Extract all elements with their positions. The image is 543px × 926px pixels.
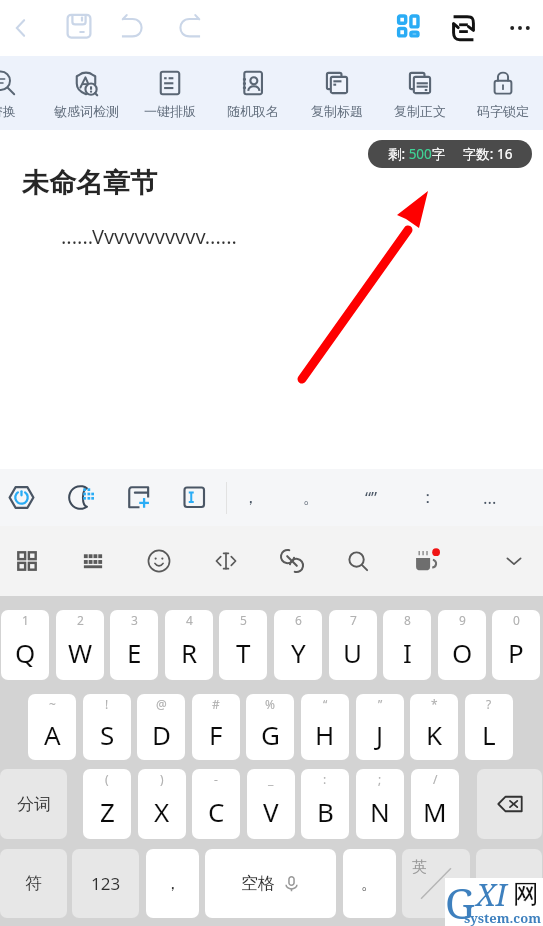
staticText: W — [68, 635, 93, 670]
button[interactable]: ) — [138, 769, 186, 839]
staticText: A — [44, 717, 61, 752]
staticText: 6 — [295, 612, 302, 628]
button[interactable]: ; — [356, 769, 404, 839]
staticText: 未命名章节 — [22, 166, 157, 200]
staticText: 9 — [459, 612, 466, 628]
staticText: ： — [419, 487, 436, 508]
staticText: _ — [268, 771, 274, 787]
staticText: “” — [365, 486, 378, 509]
staticText: 英 — [412, 858, 427, 877]
button[interactable]: 2 — [56, 610, 104, 680]
button[interactable]: 9 — [438, 610, 486, 680]
button[interactable]: 剩: 500字 字数: 16 — [368, 140, 532, 168]
button[interactable]: 随机取名 — [211, 56, 295, 130]
staticText: N — [370, 794, 390, 829]
button[interactable]: Keyboard layouts — [0, 526, 60, 596]
button[interactable]: ， — [220, 469, 280, 526]
button[interactable]: Collapse keyboard — [486, 526, 542, 596]
button[interactable]: 6 — [274, 610, 322, 680]
button[interactable]: @ — [137, 694, 185, 760]
staticText: 分词 — [17, 794, 51, 815]
staticText: R — [181, 635, 198, 670]
button[interactable]: / — [411, 769, 459, 839]
button[interactable]: ! — [83, 694, 131, 760]
button[interactable]: ? — [465, 694, 513, 760]
button[interactable]: 符 — [0, 849, 67, 918]
button[interactable]: Night mode — [52, 469, 108, 526]
button[interactable]: ， — [146, 849, 199, 918]
staticText: 复制正文 — [394, 103, 446, 119]
staticText: ( — [105, 771, 109, 787]
staticText: 。 — [361, 873, 378, 894]
staticText: ” — [378, 696, 383, 712]
staticText: E — [127, 635, 142, 670]
staticText: O — [452, 635, 473, 670]
button[interactable]: 复制正文 — [378, 56, 462, 130]
button[interactable]: ~ — [28, 694, 76, 760]
button[interactable]: 敏感词检测 — [44, 56, 128, 130]
staticText: K — [426, 717, 443, 752]
staticText: T — [236, 635, 251, 670]
button[interactable]: Enter — [476, 849, 542, 918]
button[interactable]: Edit cursor — [193, 526, 259, 596]
button[interactable]: Theme — [0, 469, 49, 526]
button[interactable]: 分词 — [0, 769, 67, 839]
button[interactable]: # — [192, 694, 240, 760]
staticText: 7 — [350, 612, 357, 628]
staticText: 符 — [25, 873, 42, 894]
button[interactable]: - — [192, 769, 240, 839]
button[interactable]: “” — [341, 469, 401, 526]
button[interactable]: 1 — [1, 610, 49, 680]
button[interactable]: New clip — [111, 469, 167, 526]
staticText: S — [100, 717, 115, 752]
button[interactable]: : — [301, 769, 349, 839]
staticText: 。 — [303, 487, 320, 508]
button[interactable]: 复制标题 — [295, 56, 379, 130]
button[interactable]: ( — [83, 769, 131, 839]
button[interactable]: Back — [0, 0, 43, 56]
button[interactable]: * — [410, 694, 458, 760]
staticText: ! — [105, 696, 109, 712]
button[interactable]: Emoji — [126, 526, 192, 596]
button[interactable]: 替换 — [0, 56, 45, 130]
staticText: 替换 — [0, 103, 16, 119]
button[interactable]: 一键排版 — [128, 56, 212, 130]
button[interactable]: Outline — [437, 0, 489, 56]
button[interactable]: ” — [356, 694, 404, 760]
button[interactable]: Delete — [477, 769, 542, 839]
button[interactable]: 空格 — [205, 849, 336, 918]
button[interactable]: “ — [301, 694, 349, 760]
button[interactable]: 5 — [219, 610, 267, 680]
button[interactable]: 4 — [165, 610, 213, 680]
staticText: @ — [156, 696, 167, 712]
button[interactable]: … — [460, 469, 520, 526]
button[interactable]: 123 — [72, 849, 139, 918]
button[interactable]: Search — [325, 526, 391, 596]
button[interactable]: 0 — [492, 610, 540, 680]
button[interactable]: Undo — [106, 0, 158, 56]
button[interactable]: More options — [497, 0, 543, 56]
button[interactable]: Coffee — [394, 526, 460, 596]
button[interactable]: 码字锁定 — [461, 56, 543, 130]
button[interactable]: 8 — [383, 610, 431, 680]
button[interactable]: Text cursor — [166, 469, 222, 526]
button[interactable]: % — [246, 694, 294, 760]
staticText: 码字锁定 — [477, 103, 529, 119]
button[interactable]: 7 — [329, 610, 377, 680]
button[interactable]: Clipboard — [259, 526, 325, 596]
staticText: ) — [160, 771, 164, 787]
button[interactable]: Chapter list — [382, 0, 434, 56]
button[interactable]: 。 — [343, 849, 396, 918]
button[interactable]: 英 — [402, 849, 470, 918]
staticText: 随机取名 — [227, 103, 279, 119]
button[interactable]: _ — [247, 769, 295, 839]
staticText: 复制标题 — [311, 103, 363, 119]
button[interactable]: 。 — [281, 469, 341, 526]
staticText: 网 — [513, 878, 539, 911]
button[interactable]: Redo — [164, 0, 216, 56]
button[interactable]: Keypad — [60, 526, 126, 596]
button[interactable]: Save — [53, 0, 105, 56]
staticText: 4 — [186, 612, 193, 628]
button[interactable]: ： — [397, 469, 457, 526]
button[interactable]: 3 — [110, 610, 158, 680]
